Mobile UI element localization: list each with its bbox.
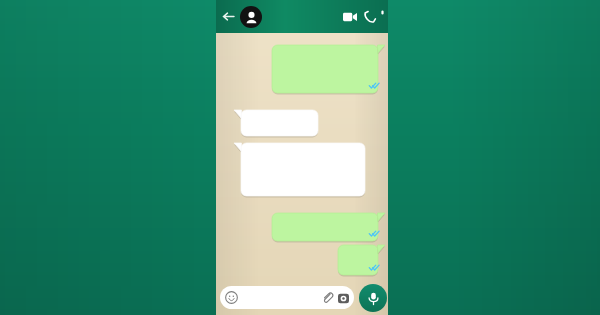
button[interactable] — [234, 143, 365, 196]
button[interactable]: Emoji — [220, 286, 354, 309]
button[interactable]: Attach — [320, 290, 335, 305]
button[interactable]: Camera — [336, 291, 350, 305]
button[interactable]: Record voice message — [359, 284, 387, 312]
button[interactable]: Voice call — [360, 7, 380, 27]
button[interactable] — [234, 110, 318, 136]
button[interactable]: Back — [218, 6, 238, 26]
button[interactable]: More options — [377, 7, 388, 18]
button[interactable]: Emoji — [224, 290, 239, 305]
button[interactable] — [338, 245, 385, 275]
button[interactable]: Contact profile — [240, 6, 262, 28]
button[interactable] — [272, 213, 385, 241]
button[interactable] — [272, 45, 385, 93]
button[interactable]: Video call — [340, 7, 360, 27]
